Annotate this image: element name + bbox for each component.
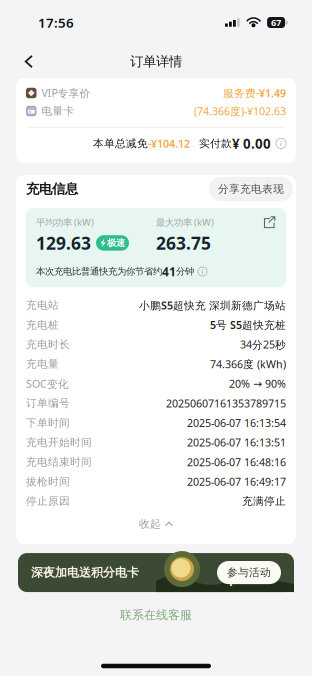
- button[interactable]: 联系在线客服: [120, 605, 192, 625]
- staticText: (74.366度)-¥102.63: [194, 104, 286, 118]
- staticText: 2025-06-07 16:13:51: [187, 435, 286, 450]
- staticText: 充电桩: [26, 318, 59, 331]
- staticText: 41: [162, 263, 176, 279]
- staticText: 最大功率 (kW): [156, 216, 214, 228]
- staticText: VIP专享价: [41, 86, 90, 100]
- staticText: 极速: [107, 237, 125, 249]
- staticText: 充电时长: [26, 338, 70, 351]
- staticText: 充电量: [26, 357, 59, 371]
- staticText: 充电站: [26, 299, 59, 312]
- staticText: 拔枪时间: [26, 475, 70, 488]
- staticText: 分享充电表现: [218, 182, 284, 195]
- staticText: 实付款: [199, 137, 232, 150]
- staticText: 67: [271, 16, 281, 29]
- staticText: ¥ 0.00: [232, 135, 271, 152]
- staticText: 充电信息: [26, 181, 78, 197]
- staticText: 2025-06-07 16:49:17: [187, 475, 286, 489]
- staticText: 129.63: [36, 231, 91, 254]
- staticText: 分钟: [176, 266, 194, 277]
- staticText: -¥104.12: [148, 136, 190, 151]
- staticText: 17:56: [38, 14, 74, 31]
- staticText: 参与活动: [227, 566, 271, 579]
- staticText: 2025-06-07 16:48:16: [187, 455, 286, 469]
- button[interactable]: Share: [263, 216, 276, 228]
- staticText: 34分25秒: [240, 337, 286, 352]
- staticText: 订单编号: [26, 397, 70, 410]
- staticText: 74.366度 (kWh): [210, 357, 286, 371]
- button[interactable]: 收起: [139, 511, 173, 537]
- staticText: 20% → 90%: [229, 377, 286, 391]
- staticText: 电量卡: [41, 104, 74, 117]
- button[interactable]: Back: [12, 45, 46, 77]
- staticText: 本次充电比普通快充为你节省约: [36, 266, 162, 277]
- staticText: 充电结束时间: [26, 455, 92, 469]
- staticText: 深夜加电送积分电卡: [31, 565, 139, 580]
- staticText: 20250607161353789715: [166, 396, 286, 410]
- staticText: 5号 S5超快充桩: [210, 318, 286, 332]
- staticText: 下单时间: [26, 416, 70, 429]
- button[interactable]: 深夜加电送积分电卡: [0, 553, 312, 592]
- staticText: 充满停止: [242, 495, 286, 508]
- staticText: 订单详情: [130, 53, 182, 70]
- staticText: 2025-06-07 16:13:54: [187, 416, 286, 430]
- staticText: 小鹏S5超快充 深圳新德广场站: [139, 298, 286, 312]
- staticText: 平均功率 (kW): [36, 216, 94, 228]
- staticText: 充电开始时间: [26, 436, 92, 449]
- staticText: 263.75: [156, 231, 211, 254]
- staticText: 收起: [139, 517, 161, 531]
- staticText: SOC变化: [26, 376, 69, 391]
- staticText: 本单总减免: [93, 137, 148, 150]
- staticText: 服务费-¥1.49: [223, 86, 286, 100]
- button[interactable]: 分享充电表现: [209, 177, 293, 201]
- staticText: 联系在线客服: [120, 608, 192, 622]
- staticText: 停止原因: [26, 495, 70, 508]
